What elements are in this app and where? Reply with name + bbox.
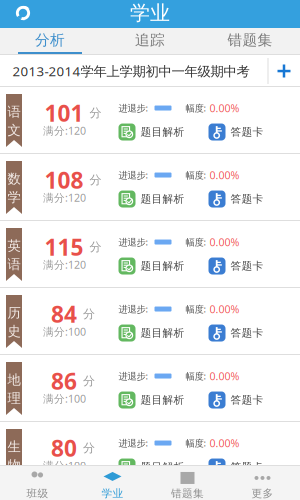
staticText: 学业 xyxy=(101,487,123,500)
staticText: 满分:100 xyxy=(43,458,86,473)
staticText: 满分:100 xyxy=(43,391,86,406)
staticText: 进退步: xyxy=(118,370,148,382)
button[interactable]: 错题集 xyxy=(150,466,225,500)
staticText: 86 xyxy=(51,366,77,396)
staticText: 分 xyxy=(83,441,95,455)
button[interactable]: 错题集 xyxy=(200,28,300,54)
staticText: 分 xyxy=(89,106,101,120)
staticText: 物 xyxy=(7,457,20,473)
staticText: 0.00% xyxy=(209,436,239,450)
staticText: 满分:120 xyxy=(43,123,86,138)
staticText: 幅度: xyxy=(185,370,206,382)
staticText: 题目解析 xyxy=(140,393,184,406)
button[interactable]: 英 xyxy=(0,221,300,288)
staticText: 0.00% xyxy=(209,235,239,249)
staticText: 历 xyxy=(7,305,20,321)
staticText: 题目解析 xyxy=(140,192,184,205)
staticText: 进退步: xyxy=(118,437,148,449)
staticText: 错题集 xyxy=(227,31,272,49)
staticText: 题目解析 xyxy=(140,125,184,138)
staticText: 满分:100 xyxy=(43,324,86,339)
button[interactable]: 语 xyxy=(0,87,300,154)
button[interactable]: 历 xyxy=(0,288,300,355)
staticText: 班级 xyxy=(26,487,48,500)
staticText: 0.00% xyxy=(209,168,239,182)
staticText: 追踪 xyxy=(135,31,165,49)
staticText: 80 xyxy=(51,433,77,463)
staticText: 答题卡 xyxy=(230,460,263,473)
button[interactable]: Home xyxy=(6,0,40,26)
staticText: 题目解析 xyxy=(140,259,184,272)
staticText: 分析 xyxy=(35,31,65,49)
staticText: 题目解析 xyxy=(140,326,184,339)
staticText: 分 xyxy=(83,307,95,321)
staticText: 生 xyxy=(7,439,20,455)
staticText: 幅度: xyxy=(185,303,206,315)
button[interactable]: Add exam xyxy=(268,55,299,87)
staticText: 题目解析 xyxy=(140,460,184,473)
staticText: 语 xyxy=(7,104,20,120)
staticText: 115 xyxy=(44,232,83,262)
button[interactable]: 班级 xyxy=(0,466,75,500)
staticText: 进退步: xyxy=(118,169,148,181)
staticText: 英 xyxy=(7,238,20,254)
staticText: 2013-2014学年上学期初中一年级期中考 xyxy=(12,62,249,80)
staticText: 更多 xyxy=(251,487,273,500)
button[interactable]: 生 xyxy=(0,422,300,489)
staticText: 幅度: xyxy=(185,102,206,114)
staticText: 答题卡 xyxy=(230,393,263,406)
staticText: 史 xyxy=(7,323,20,339)
staticText: 满分:120 xyxy=(43,257,86,272)
staticText: 分 xyxy=(89,240,101,254)
staticText: 进退步: xyxy=(118,102,148,114)
staticText: 答题卡 xyxy=(230,326,263,339)
staticText: 满分:120 xyxy=(43,190,86,205)
staticText: 进退步: xyxy=(118,303,148,315)
staticText: 答题卡 xyxy=(230,192,263,205)
staticText: 学 xyxy=(7,189,20,205)
button[interactable]: 追踪 xyxy=(100,28,200,54)
staticText: 理 xyxy=(7,390,20,406)
staticText: 答题卡 xyxy=(230,259,263,272)
button[interactable]: 分析 xyxy=(0,28,100,54)
button[interactable]: 学业 xyxy=(75,466,150,500)
staticText: 84 xyxy=(51,299,77,329)
staticText: 幅度: xyxy=(185,437,206,449)
staticText: 学业 xyxy=(130,1,170,25)
staticText: 文 xyxy=(7,122,20,138)
staticText: 分 xyxy=(89,173,101,187)
staticText: 幅度: xyxy=(185,169,206,181)
staticText: 0.00% xyxy=(209,101,239,115)
staticText: 语 xyxy=(7,256,20,272)
staticText: 101 xyxy=(44,98,83,128)
staticText: 108 xyxy=(44,165,83,195)
staticText: 进退步: xyxy=(118,236,148,248)
staticText: 答题卡 xyxy=(230,125,263,138)
staticText: 地 xyxy=(7,372,20,388)
button[interactable]: 地 xyxy=(0,355,300,422)
staticText: 幅度: xyxy=(185,236,206,248)
button[interactable]: 更多 xyxy=(225,466,300,500)
staticText: 分 xyxy=(83,374,95,388)
staticText: 数 xyxy=(7,171,20,187)
staticText: 错题集 xyxy=(171,487,204,500)
staticText: 0.00% xyxy=(209,369,239,383)
button[interactable]: 数 xyxy=(0,154,300,221)
staticText: 0.00% xyxy=(209,302,239,316)
